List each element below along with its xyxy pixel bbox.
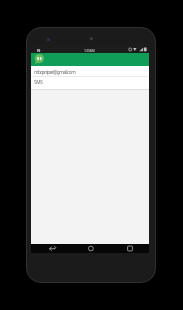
button[interactable] — [31, 53, 149, 66]
button[interactable] — [110, 244, 149, 253]
button[interactable]: SMS — [31, 77, 149, 89]
staticText: N — [37, 48, 41, 54]
staticText: 1:20 AM — [84, 48, 95, 53]
button[interactable] — [31, 244, 71, 253]
button[interactable] — [71, 244, 110, 253]
staticText: SMS — [34, 79, 43, 86]
button[interactable]: mbqsniper@gmail.com — [31, 66, 149, 76]
staticText: mbqsniper@gmail.com — [34, 69, 76, 76]
